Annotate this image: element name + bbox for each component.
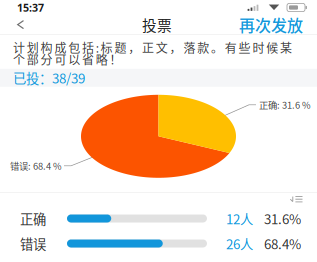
staticText: 31.6% bbox=[264, 209, 301, 228]
staticText: 26人 bbox=[226, 234, 253, 253]
button[interactable]: Back bbox=[4, 15, 36, 34]
staticText: 再次发放 bbox=[239, 13, 303, 36]
staticText: 正确 bbox=[20, 209, 46, 228]
staticText: 已投：38/39 bbox=[13, 68, 85, 87]
staticText: 12人 bbox=[226, 209, 253, 228]
staticText: 计划构成包括:标题，正文，落款。有些时候某个部分可以省略！ bbox=[13, 39, 292, 68]
staticText: 投票 bbox=[142, 14, 172, 35]
staticText: 错误 bbox=[20, 234, 46, 253]
staticText: 68.4% bbox=[264, 234, 301, 253]
staticText: 正确: 31.6 % bbox=[259, 98, 311, 111]
staticText: 错误: 68.4 % bbox=[10, 159, 62, 172]
button[interactable]: Sort order bbox=[284, 193, 309, 206]
staticText: 15:37 bbox=[17, 0, 44, 15]
button[interactable]: 再次发放 bbox=[234, 15, 308, 34]
